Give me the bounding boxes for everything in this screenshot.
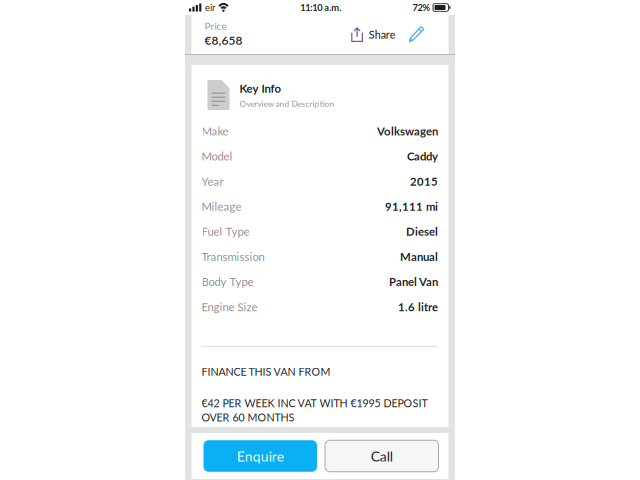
staticText: eir: [205, 2, 215, 13]
staticText: 72%: [412, 2, 430, 13]
staticText: 1.6 litre: [398, 300, 438, 314]
staticText: Call: [371, 448, 393, 464]
staticText: Year: [201, 174, 223, 188]
staticText: Manual: [400, 250, 438, 263]
staticText: Key Info: [239, 81, 281, 95]
staticText: Body Type: [201, 275, 253, 288]
button[interactable]: Enquire: [203, 440, 317, 472]
staticText: 2015: [410, 174, 438, 188]
button[interactable]: Edit: [396, 26, 424, 43]
staticText: Share: [369, 28, 396, 41]
staticText: Transmission: [201, 250, 264, 263]
staticText: Price: [204, 20, 226, 32]
staticText: 11:10 a.m.: [300, 2, 341, 13]
staticText: Engine Size: [201, 300, 257, 314]
staticText: Caddy: [407, 149, 438, 163]
staticText: FINANCE THIS VAN FROM: [201, 365, 330, 378]
staticText: Volkswagen: [377, 124, 438, 138]
staticText: €8,658: [204, 33, 242, 47]
staticText: Make: [201, 124, 228, 138]
staticText: Panel Van: [389, 275, 438, 288]
staticText: Diesel: [406, 225, 438, 238]
staticText: Enquire: [237, 448, 284, 464]
staticText: €42 PER WEEK INC VAT WITH €1995 DEPOSIT …: [201, 397, 427, 424]
staticText: Mileage: [201, 200, 241, 213]
staticText: Overview and Description: [239, 99, 334, 108]
button[interactable]: Call: [325, 440, 438, 472]
staticText: Fuel Type: [201, 225, 249, 238]
staticText: 91,111 mi: [385, 200, 438, 213]
button[interactable]: Share: [352, 27, 396, 42]
staticText: Model: [201, 149, 232, 163]
